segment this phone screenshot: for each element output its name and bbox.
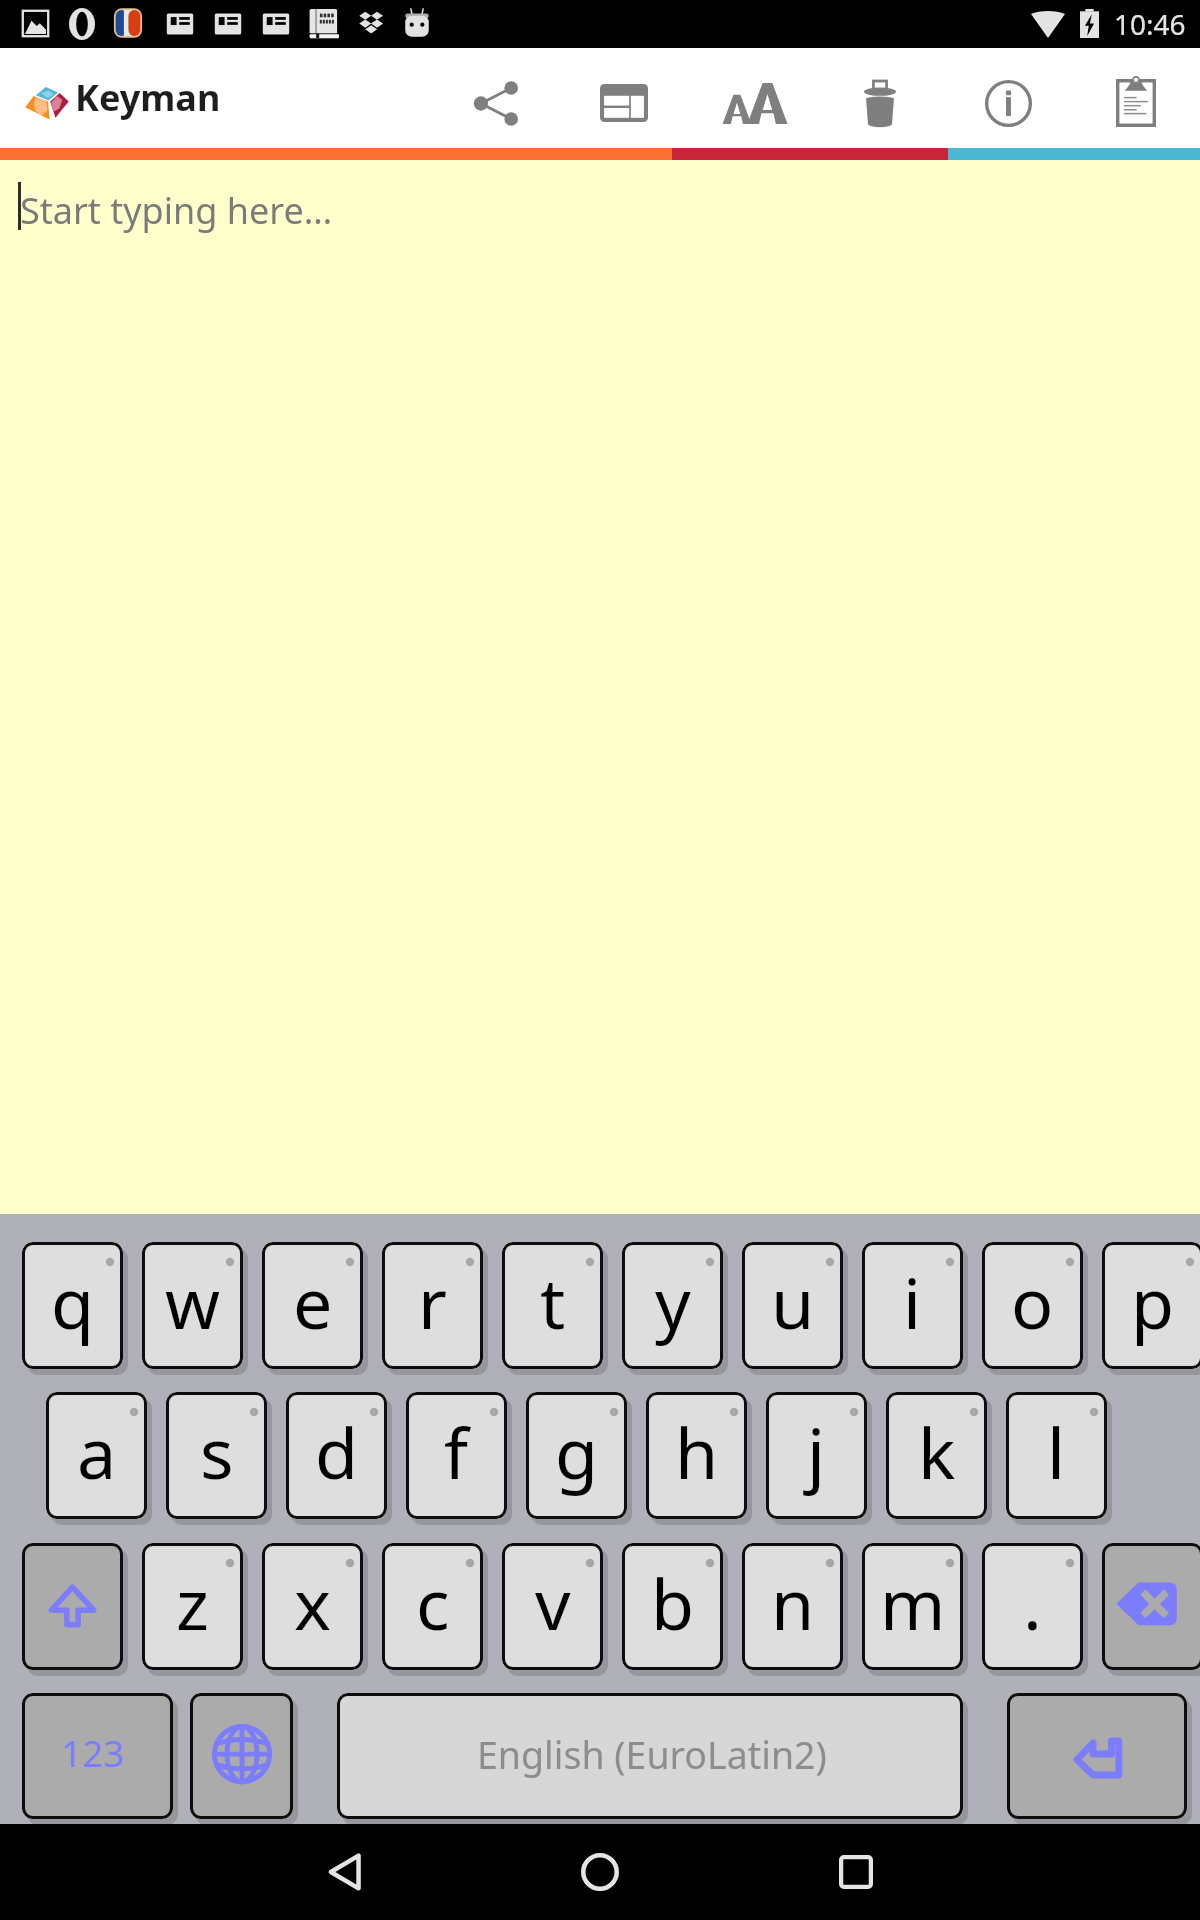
staticText: k xyxy=(918,1404,956,1499)
button[interactable]: Home xyxy=(540,1824,660,1920)
button[interactable]: t xyxy=(502,1242,603,1369)
staticText: b xyxy=(651,1555,695,1650)
button[interactable]: Info xyxy=(944,48,1072,148)
staticText: 123 xyxy=(61,1727,125,1777)
button[interactable]: r xyxy=(382,1242,483,1369)
button[interactable]: Backspace xyxy=(1102,1543,1200,1670)
staticText: o xyxy=(1011,1254,1054,1349)
button[interactable]: l xyxy=(1006,1392,1107,1519)
staticText: English (EuroLatin2) xyxy=(477,1729,827,1780)
staticText: p xyxy=(1131,1254,1175,1349)
button[interactable]: h xyxy=(646,1392,747,1519)
staticText: 10:46 xyxy=(1114,5,1186,43)
staticText: z xyxy=(176,1555,209,1650)
button[interactable]: s xyxy=(166,1392,267,1519)
staticText: n xyxy=(771,1555,815,1650)
button[interactable]: b xyxy=(622,1543,723,1670)
button[interactable]: n xyxy=(742,1543,843,1670)
staticText: u xyxy=(771,1254,815,1349)
button[interactable]: c xyxy=(382,1543,483,1670)
staticText: x xyxy=(294,1555,332,1650)
staticText: . xyxy=(1023,1555,1042,1650)
staticText: Start typing here… xyxy=(20,186,333,235)
staticText: a xyxy=(77,1404,117,1499)
button[interactable]: k xyxy=(886,1392,987,1519)
button[interactable]: e xyxy=(262,1242,363,1369)
staticText: g xyxy=(555,1404,599,1499)
button[interactable]: z xyxy=(142,1543,243,1670)
button[interactable]: j xyxy=(766,1392,867,1519)
button[interactable]: p xyxy=(1102,1242,1200,1369)
staticText: s xyxy=(200,1404,234,1499)
staticText: c xyxy=(416,1555,450,1650)
button[interactable]: u xyxy=(742,1242,843,1369)
button[interactable]: i xyxy=(862,1242,963,1369)
button[interactable]: y xyxy=(622,1242,723,1369)
button[interactable]: o xyxy=(982,1242,1083,1369)
button[interactable]: f xyxy=(406,1392,507,1519)
button[interactable]: Share xyxy=(432,48,560,148)
button[interactable]: g xyxy=(526,1392,627,1519)
button[interactable]: a xyxy=(46,1392,147,1519)
button[interactable]: d xyxy=(286,1392,387,1519)
staticText: f xyxy=(444,1404,469,1499)
staticText: v xyxy=(535,1555,571,1650)
button[interactable]: Text size xyxy=(688,48,816,148)
button[interactable]: Keyboard layout xyxy=(560,48,688,148)
button[interactable]: Shift xyxy=(22,1543,123,1670)
staticText: d xyxy=(315,1404,359,1499)
staticText: w xyxy=(165,1254,221,1349)
button[interactable]: Back xyxy=(284,1824,404,1920)
button[interactable]: w xyxy=(142,1242,243,1369)
button[interactable]: Recent apps xyxy=(796,1824,916,1920)
button[interactable]: Change language xyxy=(190,1693,293,1819)
staticText: y xyxy=(655,1254,691,1349)
button[interactable]: . xyxy=(982,1543,1083,1670)
staticText: e xyxy=(293,1254,333,1349)
button[interactable]: x xyxy=(262,1543,363,1670)
button[interactable]: q xyxy=(22,1242,123,1369)
staticText: Keyman xyxy=(75,73,221,122)
staticText: r xyxy=(418,1254,447,1349)
button[interactable]: Enter xyxy=(1007,1693,1187,1819)
button[interactable]: Clipboard xyxy=(1072,48,1200,148)
button[interactable]: Start typing here… xyxy=(0,160,1200,1214)
staticText: i xyxy=(903,1254,922,1349)
staticText: q xyxy=(51,1254,95,1349)
staticText: j xyxy=(807,1404,826,1499)
button[interactable]: m xyxy=(862,1543,963,1670)
button[interactable]: v xyxy=(502,1543,603,1670)
button[interactable]: 123 xyxy=(22,1693,173,1819)
button[interactable]: English (EuroLatin2) xyxy=(337,1693,963,1819)
button[interactable]: Clear text xyxy=(816,48,944,148)
staticText: m xyxy=(880,1555,946,1650)
staticText: l xyxy=(1047,1404,1066,1499)
staticText: h xyxy=(675,1404,719,1499)
staticText: t xyxy=(540,1254,566,1349)
